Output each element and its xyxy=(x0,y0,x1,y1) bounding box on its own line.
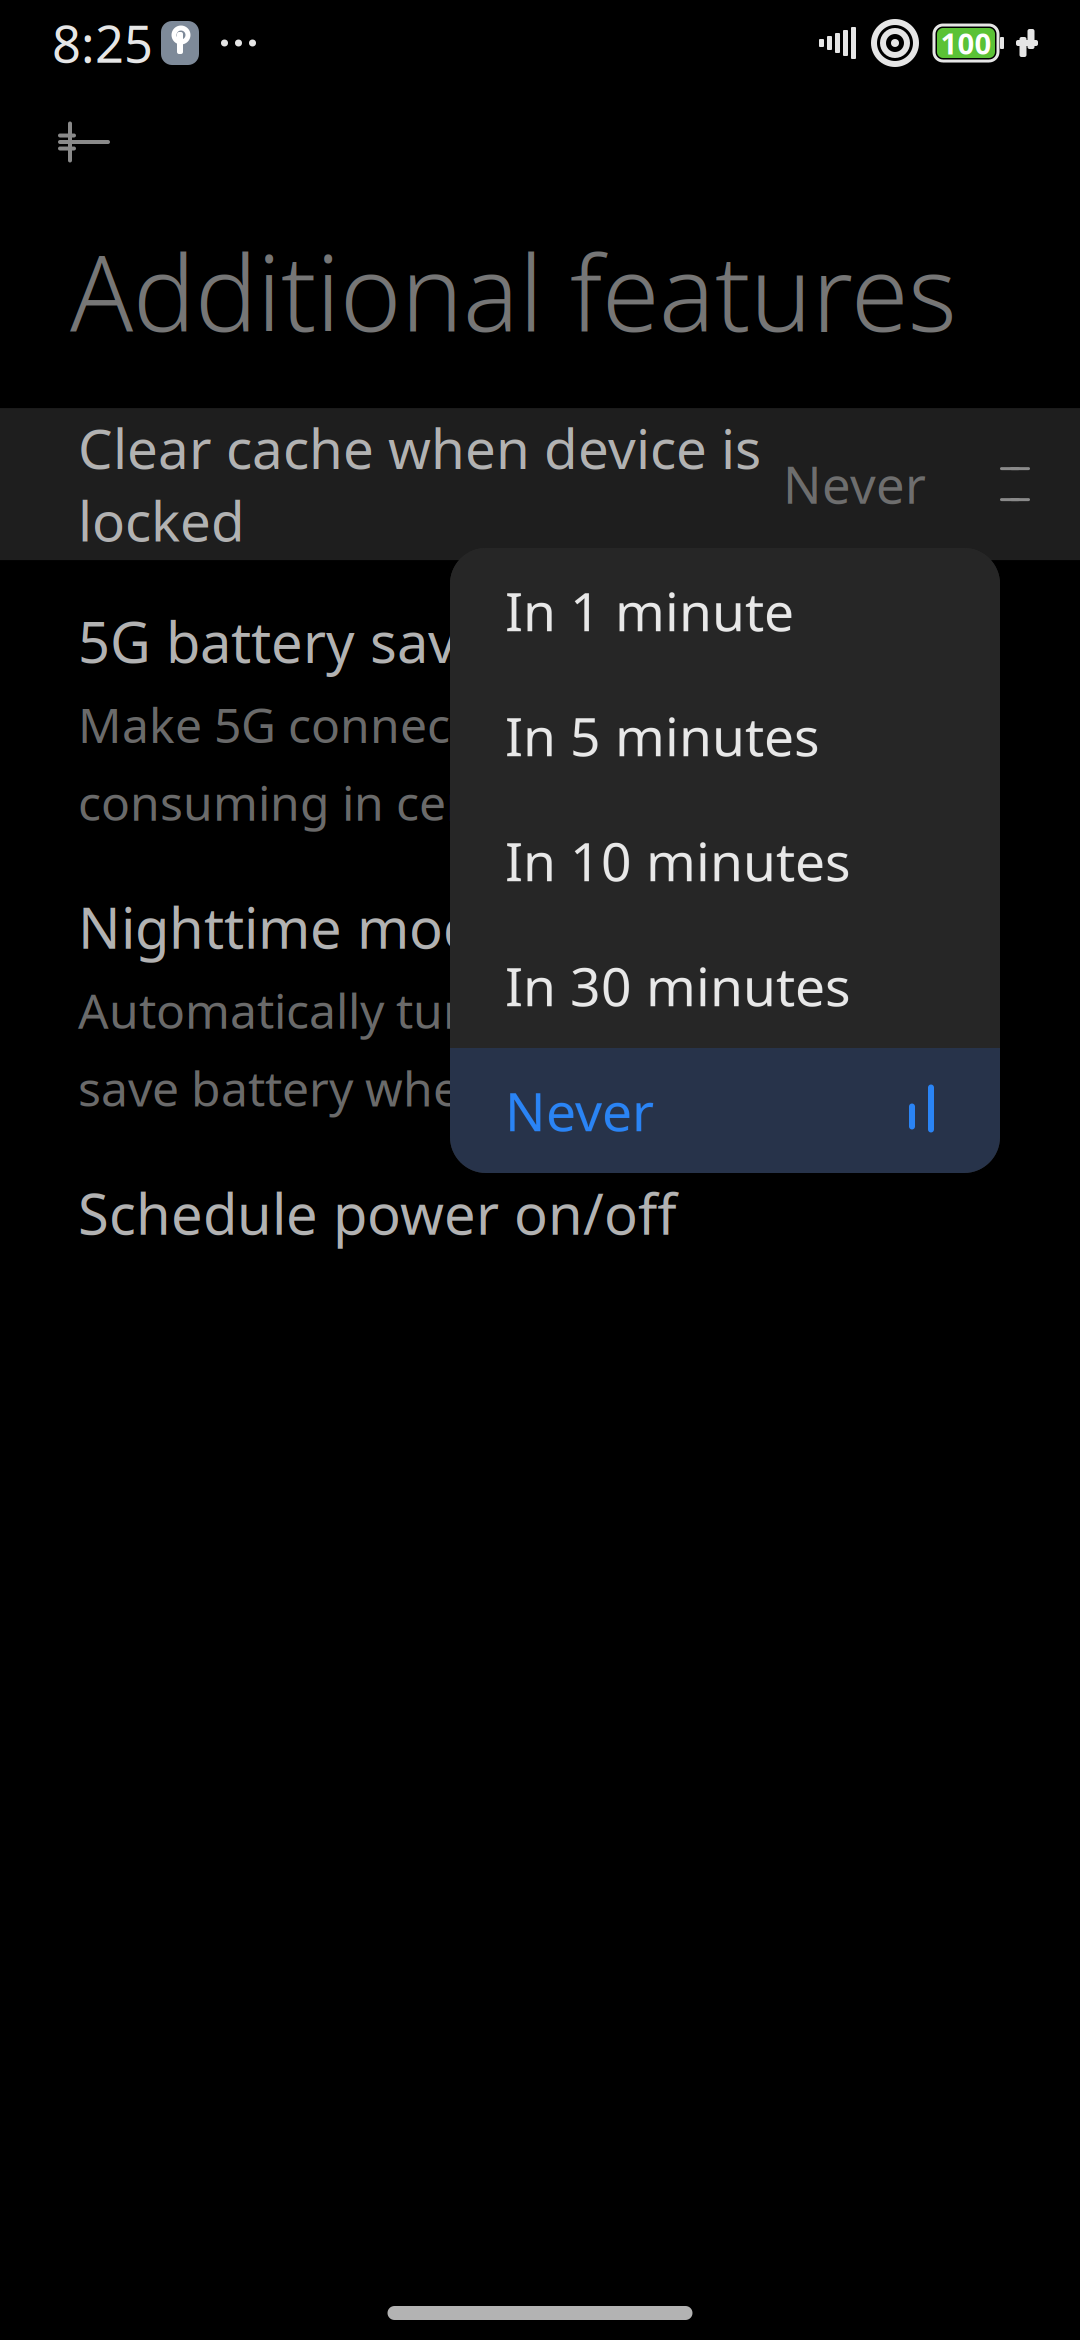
staticText: 5G battery saver xyxy=(78,604,511,678)
staticText: In 5 minutes xyxy=(505,700,820,771)
staticText: In 10 minutes xyxy=(505,825,851,896)
staticText: Never xyxy=(505,1075,654,1146)
button[interactable]: Never xyxy=(450,1048,1000,1173)
button[interactable]: Clear cache when device is locked xyxy=(0,408,1080,560)
staticText: Make 5G connectivity less power xyxy=(78,692,808,756)
staticText: Schedule power on/off xyxy=(78,1176,677,1250)
button[interactable]: In 10 minutes xyxy=(450,798,1000,923)
button[interactable]: In 30 minutes xyxy=(450,923,1000,1048)
button[interactable]: 5G battery saver xyxy=(0,604,1080,834)
button[interactable]: Schedule power on/off xyxy=(0,1176,1080,1250)
staticText: Automatically turn off 5G to xyxy=(78,978,699,1042)
staticText: save battery when sleeping xyxy=(78,1056,693,1120)
button[interactable]: Back xyxy=(0,104,132,180)
staticText: consuming in certain situations xyxy=(78,770,784,834)
button[interactable]: In 5 minutes xyxy=(450,673,1000,798)
staticText: Never xyxy=(783,450,926,518)
staticText: 100 xyxy=(940,23,991,62)
staticText: In 1 minute xyxy=(505,575,794,646)
staticText: 8:25 xyxy=(52,9,153,77)
button[interactable]: In 1 minute xyxy=(450,548,1000,673)
button[interactable]: Nighttime mode xyxy=(0,890,1080,1120)
staticText: Additional features xyxy=(70,222,957,360)
staticText: In 30 minutes xyxy=(505,950,851,1021)
staticText: Nighttime mode xyxy=(78,890,509,964)
staticText: Clear cache when device is locked xyxy=(78,411,761,557)
